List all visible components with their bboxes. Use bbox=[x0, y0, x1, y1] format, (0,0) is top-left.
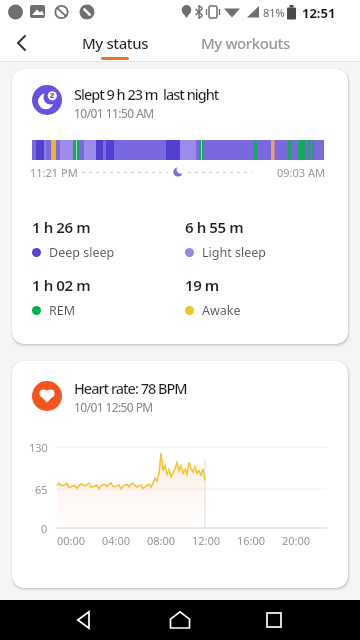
button[interactable]: Slept 9 h 23 m last night bbox=[12, 69, 348, 344]
button[interactable]: My status bbox=[53, 24, 177, 62]
staticText: 130 bbox=[29, 440, 48, 455]
staticText: 19 m bbox=[185, 275, 219, 295]
staticText: 09:03 AM bbox=[277, 165, 325, 180]
staticText: Awake bbox=[202, 302, 241, 319]
staticText: 65 bbox=[35, 482, 48, 497]
staticText: 1 h 26 m bbox=[32, 217, 91, 237]
staticText: 11:21 PM bbox=[30, 165, 78, 180]
button[interactable] bbox=[4, 25, 40, 61]
staticText: 6 h 55 m bbox=[185, 217, 244, 237]
staticText: My status bbox=[82, 33, 149, 53]
staticText: Deep sleep bbox=[49, 244, 115, 261]
staticText: Heart rate: 78 BPM bbox=[74, 378, 187, 398]
button[interactable] bbox=[56, 600, 112, 640]
staticText: 1 h 02 m bbox=[32, 275, 91, 295]
staticText: 10/01 12:50 PM bbox=[74, 399, 153, 415]
staticText: 00:00 bbox=[57, 533, 86, 548]
button[interactable] bbox=[246, 600, 302, 640]
staticText: 12:51 bbox=[302, 4, 336, 22]
staticText: Light sleep bbox=[202, 244, 266, 261]
staticText: My workouts bbox=[201, 33, 290, 53]
button[interactable]: My workouts bbox=[183, 24, 307, 62]
staticText: 10/01 11:50 AM bbox=[74, 105, 154, 121]
staticText: 81% bbox=[263, 5, 285, 20]
staticText: 08:00 bbox=[147, 533, 176, 548]
staticText: 16:00 bbox=[237, 533, 266, 548]
staticText: 0 bbox=[41, 521, 48, 536]
staticText: 12:00 bbox=[192, 533, 221, 548]
staticText: 20:00 bbox=[282, 533, 311, 548]
staticText: Slept 9 h 23 m last night bbox=[74, 84, 219, 104]
button[interactable] bbox=[152, 600, 208, 640]
button[interactable]: Heart rate: 78 BPM bbox=[12, 361, 348, 588]
staticText: REM bbox=[49, 302, 76, 319]
staticText: 04:00 bbox=[102, 533, 131, 548]
